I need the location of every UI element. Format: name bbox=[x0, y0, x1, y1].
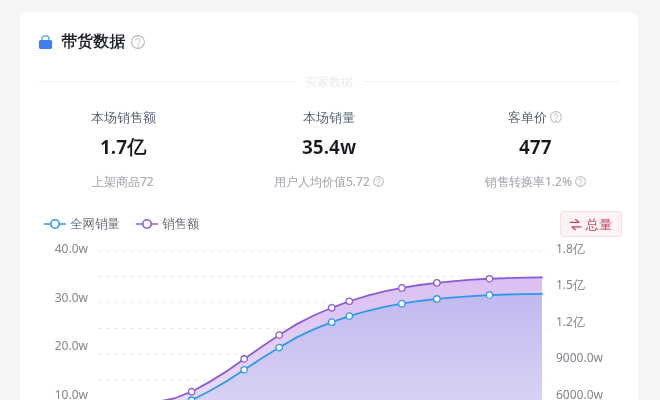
staticText: 用户人均价值5.72 bbox=[274, 173, 370, 189]
staticText: 本场销量 bbox=[303, 109, 355, 125]
button[interactable]: 本场销售额 bbox=[20, 109, 226, 189]
staticText: 35.4w bbox=[302, 134, 357, 160]
staticText: 买家数据 bbox=[305, 74, 353, 89]
staticText: 9000.0w bbox=[556, 349, 638, 365]
button[interactable]: 客单价 bbox=[432, 109, 638, 189]
staticText: 477 bbox=[519, 134, 552, 160]
staticText: 1.7亿 bbox=[100, 134, 147, 160]
staticText: 10.0w bbox=[20, 386, 88, 400]
button[interactable]: 总量 bbox=[560, 211, 622, 237]
staticText: 20.0w bbox=[20, 337, 88, 353]
staticText: 1.8亿 bbox=[556, 240, 638, 256]
button[interactable]: 带货数据 bbox=[38, 32, 145, 52]
button[interactable]: 销售额 bbox=[136, 216, 200, 232]
staticText: 本场销售额 bbox=[91, 109, 156, 125]
staticText: 全网销量 bbox=[70, 216, 120, 232]
staticText: 销售额 bbox=[162, 216, 200, 232]
staticText: 1.5亿 bbox=[556, 276, 638, 292]
button[interactable]: 本场销量 bbox=[226, 109, 432, 189]
staticText: 30.0w bbox=[20, 289, 88, 305]
button[interactable]: 全网销量 bbox=[44, 216, 120, 232]
staticText: 总量 bbox=[586, 216, 612, 232]
staticText: 1.2亿 bbox=[556, 313, 638, 329]
staticText: 40.0w bbox=[20, 240, 88, 256]
staticText: 6000.0w bbox=[556, 386, 638, 400]
staticText: 销售转换率1.2% bbox=[485, 173, 572, 189]
staticText: 客单价 bbox=[508, 109, 547, 125]
staticText: 带货数据 bbox=[61, 32, 125, 52]
staticText: 上架商品72 bbox=[92, 173, 154, 189]
